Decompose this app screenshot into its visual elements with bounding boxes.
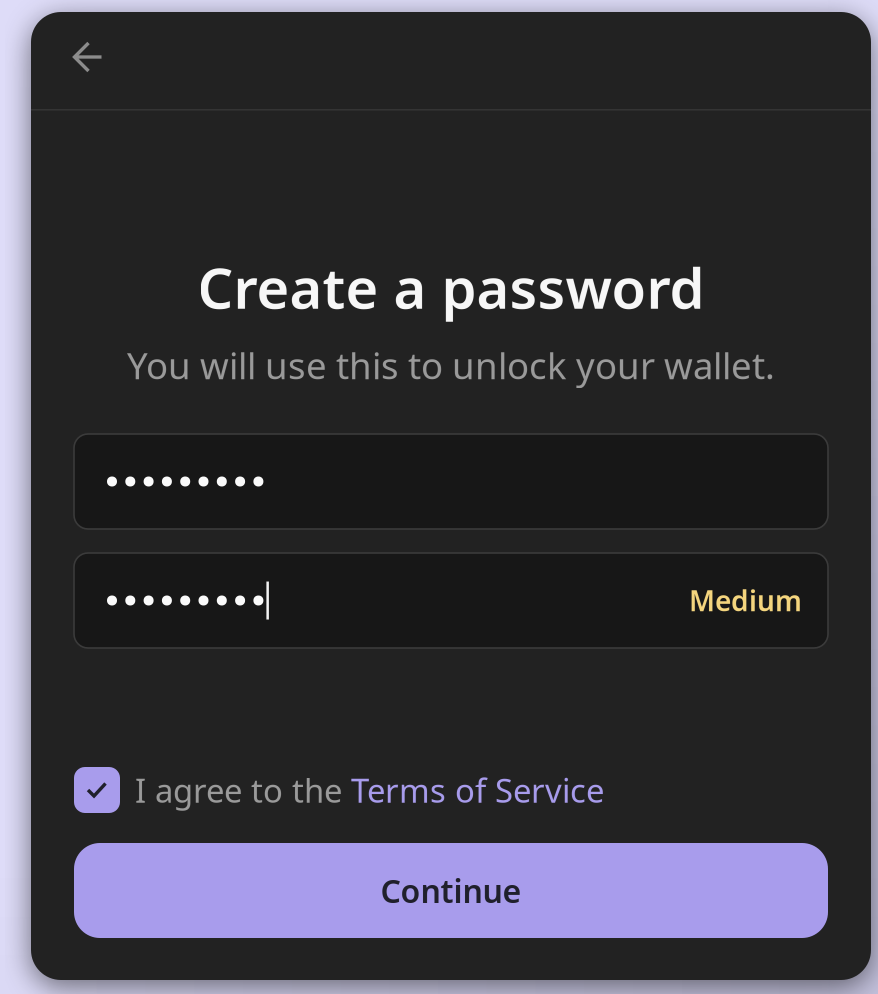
staticText: I agree to the — [135, 768, 351, 812]
staticText: Terms of Service — [351, 768, 604, 812]
staticText: Create a password — [197, 250, 704, 324]
button[interactable]: I agree to the — [74, 764, 828, 816]
staticText: Continue — [380, 869, 521, 912]
staticText: You will use this to unlock your wallet. — [127, 340, 775, 390]
button[interactable]: Continue — [74, 843, 828, 938]
button[interactable]: Back — [51, 24, 125, 90]
staticText: Medium — [689, 582, 802, 619]
